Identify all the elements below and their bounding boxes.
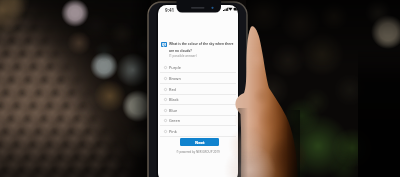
button[interactable]: Purple: [158, 62, 238, 73]
staticText: Purple: [169, 65, 181, 70]
staticText: Brown: [169, 76, 181, 81]
staticText: 9:41: [165, 7, 175, 13]
button[interactable]: Next: [180, 138, 219, 146]
staticText: Green: [169, 118, 181, 123]
button[interactable]: Blue: [158, 105, 238, 116]
staticText: Black: [169, 97, 179, 102]
button[interactable]: Black: [158, 94, 238, 105]
staticText: Q1: [162, 43, 167, 47]
staticText: Blue: [169, 108, 178, 113]
button[interactable]: Red: [158, 84, 238, 95]
staticText: What is the colour of the sky when there…: [169, 42, 238, 52]
staticText: Pink: [169, 129, 177, 134]
button[interactable]: Brown: [158, 73, 238, 84]
staticText: © powered by NER GROUP 2019: [176, 150, 220, 154]
staticText: (1 possible answer): [169, 54, 197, 58]
other: Status icons: [223, 7, 236, 11]
staticText: Red: [169, 87, 177, 92]
staticText: Next: [195, 140, 205, 145]
button[interactable]: Green: [158, 115, 238, 126]
button[interactable]: Pink: [158, 126, 238, 137]
